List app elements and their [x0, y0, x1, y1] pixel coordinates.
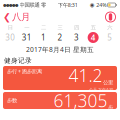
staticText: ●●●●●	[3, 3, 18, 7]
staticText: 公里	[103, 79, 113, 86]
button[interactable]: 步行 + 跑步距离	[0, 66, 120, 90]
staticText: ◉	[90, 2, 95, 8]
button[interactable]: 31	[19, 31, 35, 44]
staticText: 二	[41, 24, 46, 31]
button[interactable]: ❮	[0, 9, 30, 25]
staticText: 一	[24, 24, 29, 31]
staticText: 步	[108, 104, 113, 111]
staticText: 1	[41, 32, 46, 43]
staticText: 步数	[7, 97, 17, 104]
button[interactable]: 3	[68, 31, 85, 44]
button[interactable]: 个人资料	[105, 9, 120, 24]
staticText: 2017年8月4日 星期五	[26, 45, 94, 54]
staticText: 下午8:31	[58, 1, 78, 9]
staticText: 四	[74, 24, 79, 31]
staticText: 零	[41, 2, 46, 8]
staticText: 步行 + 跑步距离	[7, 68, 42, 75]
button[interactable]: 4	[85, 31, 101, 44]
staticText: 5	[107, 32, 112, 43]
staticText: 中国联通	[19, 2, 39, 8]
staticText: 41.2	[68, 64, 102, 87]
button[interactable]: 2	[52, 31, 68, 44]
button[interactable]: 步数	[0, 90, 120, 109]
staticText: 3	[74, 32, 79, 43]
staticText: 4	[91, 32, 96, 43]
staticText: 61,305	[53, 89, 107, 112]
staticText: ❮	[3, 12, 11, 22]
staticText: 24%	[96, 1, 106, 9]
staticText: 六	[107, 24, 112, 31]
staticText: 三	[57, 24, 62, 31]
staticText: 五	[91, 24, 96, 31]
button[interactable]: 1	[35, 31, 52, 44]
staticText: 健身记录	[4, 56, 32, 65]
button[interactable]: 5	[101, 31, 118, 44]
staticText: 30	[5, 32, 15, 43]
staticText: 八月	[12, 11, 30, 23]
staticText: 今天 下午4:30	[89, 87, 113, 92]
staticText: 日	[8, 24, 13, 31]
staticText: 2	[57, 32, 62, 43]
button[interactable]: 30	[2, 31, 19, 44]
staticText: 31	[22, 32, 32, 43]
